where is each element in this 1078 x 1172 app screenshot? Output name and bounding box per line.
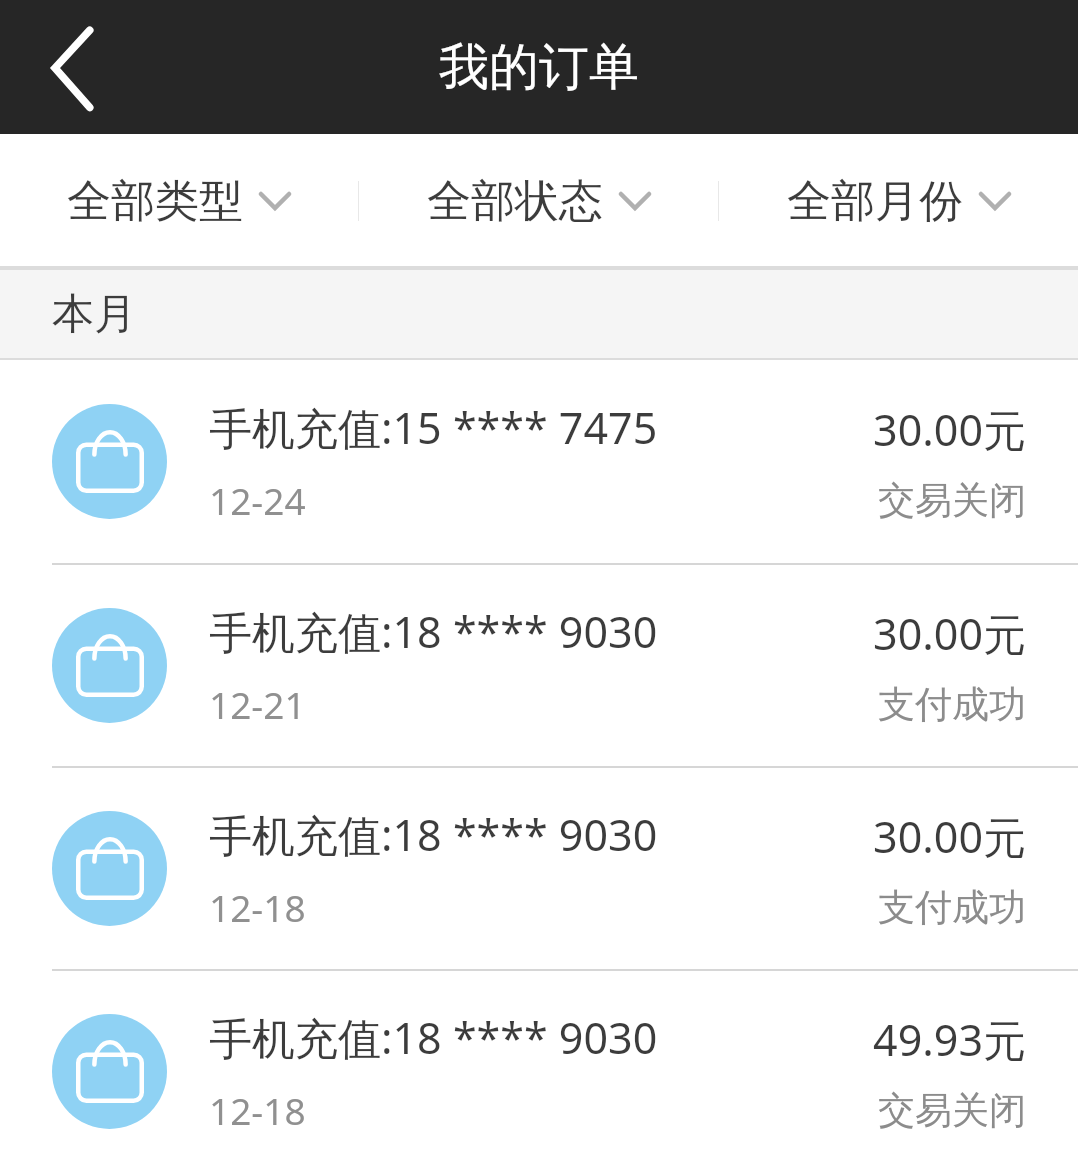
staticText: 手机充值:15 **** 7475 — [209, 398, 658, 457]
staticText: 30.00元 — [873, 807, 1026, 866]
staticText: 手机充值:18 **** 9030 — [209, 805, 658, 864]
staticText: 12-24 — [209, 475, 306, 525]
staticText: 我的订单 — [439, 36, 639, 99]
staticText: 交易关闭 — [878, 1087, 1026, 1134]
staticText: 支付成功 — [878, 884, 1026, 931]
button[interactable]: 全部月份 — [719, 134, 1078, 268]
staticText: 30.00元 — [873, 400, 1026, 459]
button[interactable]: 手机充值:15 **** 7475 — [0, 360, 1078, 563]
button[interactable]: 手机充值:18 **** 9030 — [0, 565, 1078, 766]
button[interactable]: 手机充值:18 **** 9030 — [0, 768, 1078, 969]
staticText: 支付成功 — [878, 681, 1026, 728]
button[interactable]: 全部类型 — [0, 134, 358, 268]
staticText: 手机充值:18 **** 9030 — [209, 1008, 658, 1067]
staticText: 12-18 — [209, 882, 306, 932]
button[interactable]: Back — [20, 15, 125, 120]
button[interactable]: 全部状态 — [359, 134, 718, 268]
staticText: 30.00元 — [873, 604, 1026, 663]
staticText: 手机充值:18 **** 9030 — [209, 602, 658, 661]
staticText: 全部类型 — [67, 174, 243, 229]
staticText: 全部月份 — [787, 174, 963, 229]
staticText: 49.93元 — [873, 1010, 1026, 1069]
staticText: 本月 — [52, 288, 136, 341]
staticText: 全部状态 — [427, 174, 603, 229]
staticText: 12-18 — [209, 1085, 306, 1135]
button[interactable]: 手机充值:18 **** 9030 — [0, 971, 1078, 1172]
staticText: 交易关闭 — [878, 477, 1026, 524]
staticText: 12-21 — [209, 679, 306, 729]
